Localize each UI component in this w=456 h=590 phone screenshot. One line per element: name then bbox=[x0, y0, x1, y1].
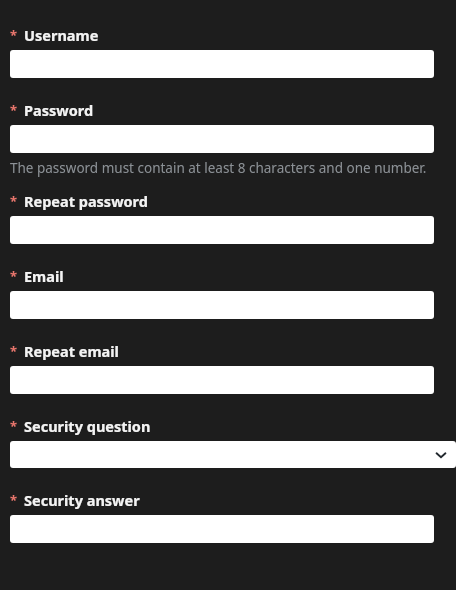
staticText: Password bbox=[24, 100, 94, 120]
staticText: * bbox=[10, 342, 18, 360]
staticText: * bbox=[10, 491, 18, 509]
button[interactable]: Password bbox=[10, 125, 434, 153]
button[interactable]: Security answer bbox=[10, 515, 434, 543]
staticText: * bbox=[10, 26, 18, 44]
staticText: The password must contain at least 8 cha… bbox=[10, 159, 427, 177]
staticText: * bbox=[10, 101, 18, 119]
staticText: Security question bbox=[24, 416, 151, 436]
button[interactable]: Repeat email bbox=[10, 366, 434, 394]
staticText: Security answer bbox=[24, 490, 140, 510]
staticText: Repeat email bbox=[24, 341, 119, 361]
staticText: Email bbox=[24, 266, 64, 286]
staticText: * bbox=[10, 192, 18, 210]
button[interactable]: Security question bbox=[10, 441, 456, 468]
staticText: * bbox=[10, 267, 18, 285]
button[interactable]: Username bbox=[10, 50, 434, 78]
staticText: Username bbox=[24, 25, 99, 45]
staticText: * bbox=[10, 417, 18, 435]
button[interactable]: Email bbox=[10, 291, 434, 319]
staticText: Repeat password bbox=[24, 191, 148, 211]
button[interactable]: Repeat password bbox=[10, 216, 434, 244]
